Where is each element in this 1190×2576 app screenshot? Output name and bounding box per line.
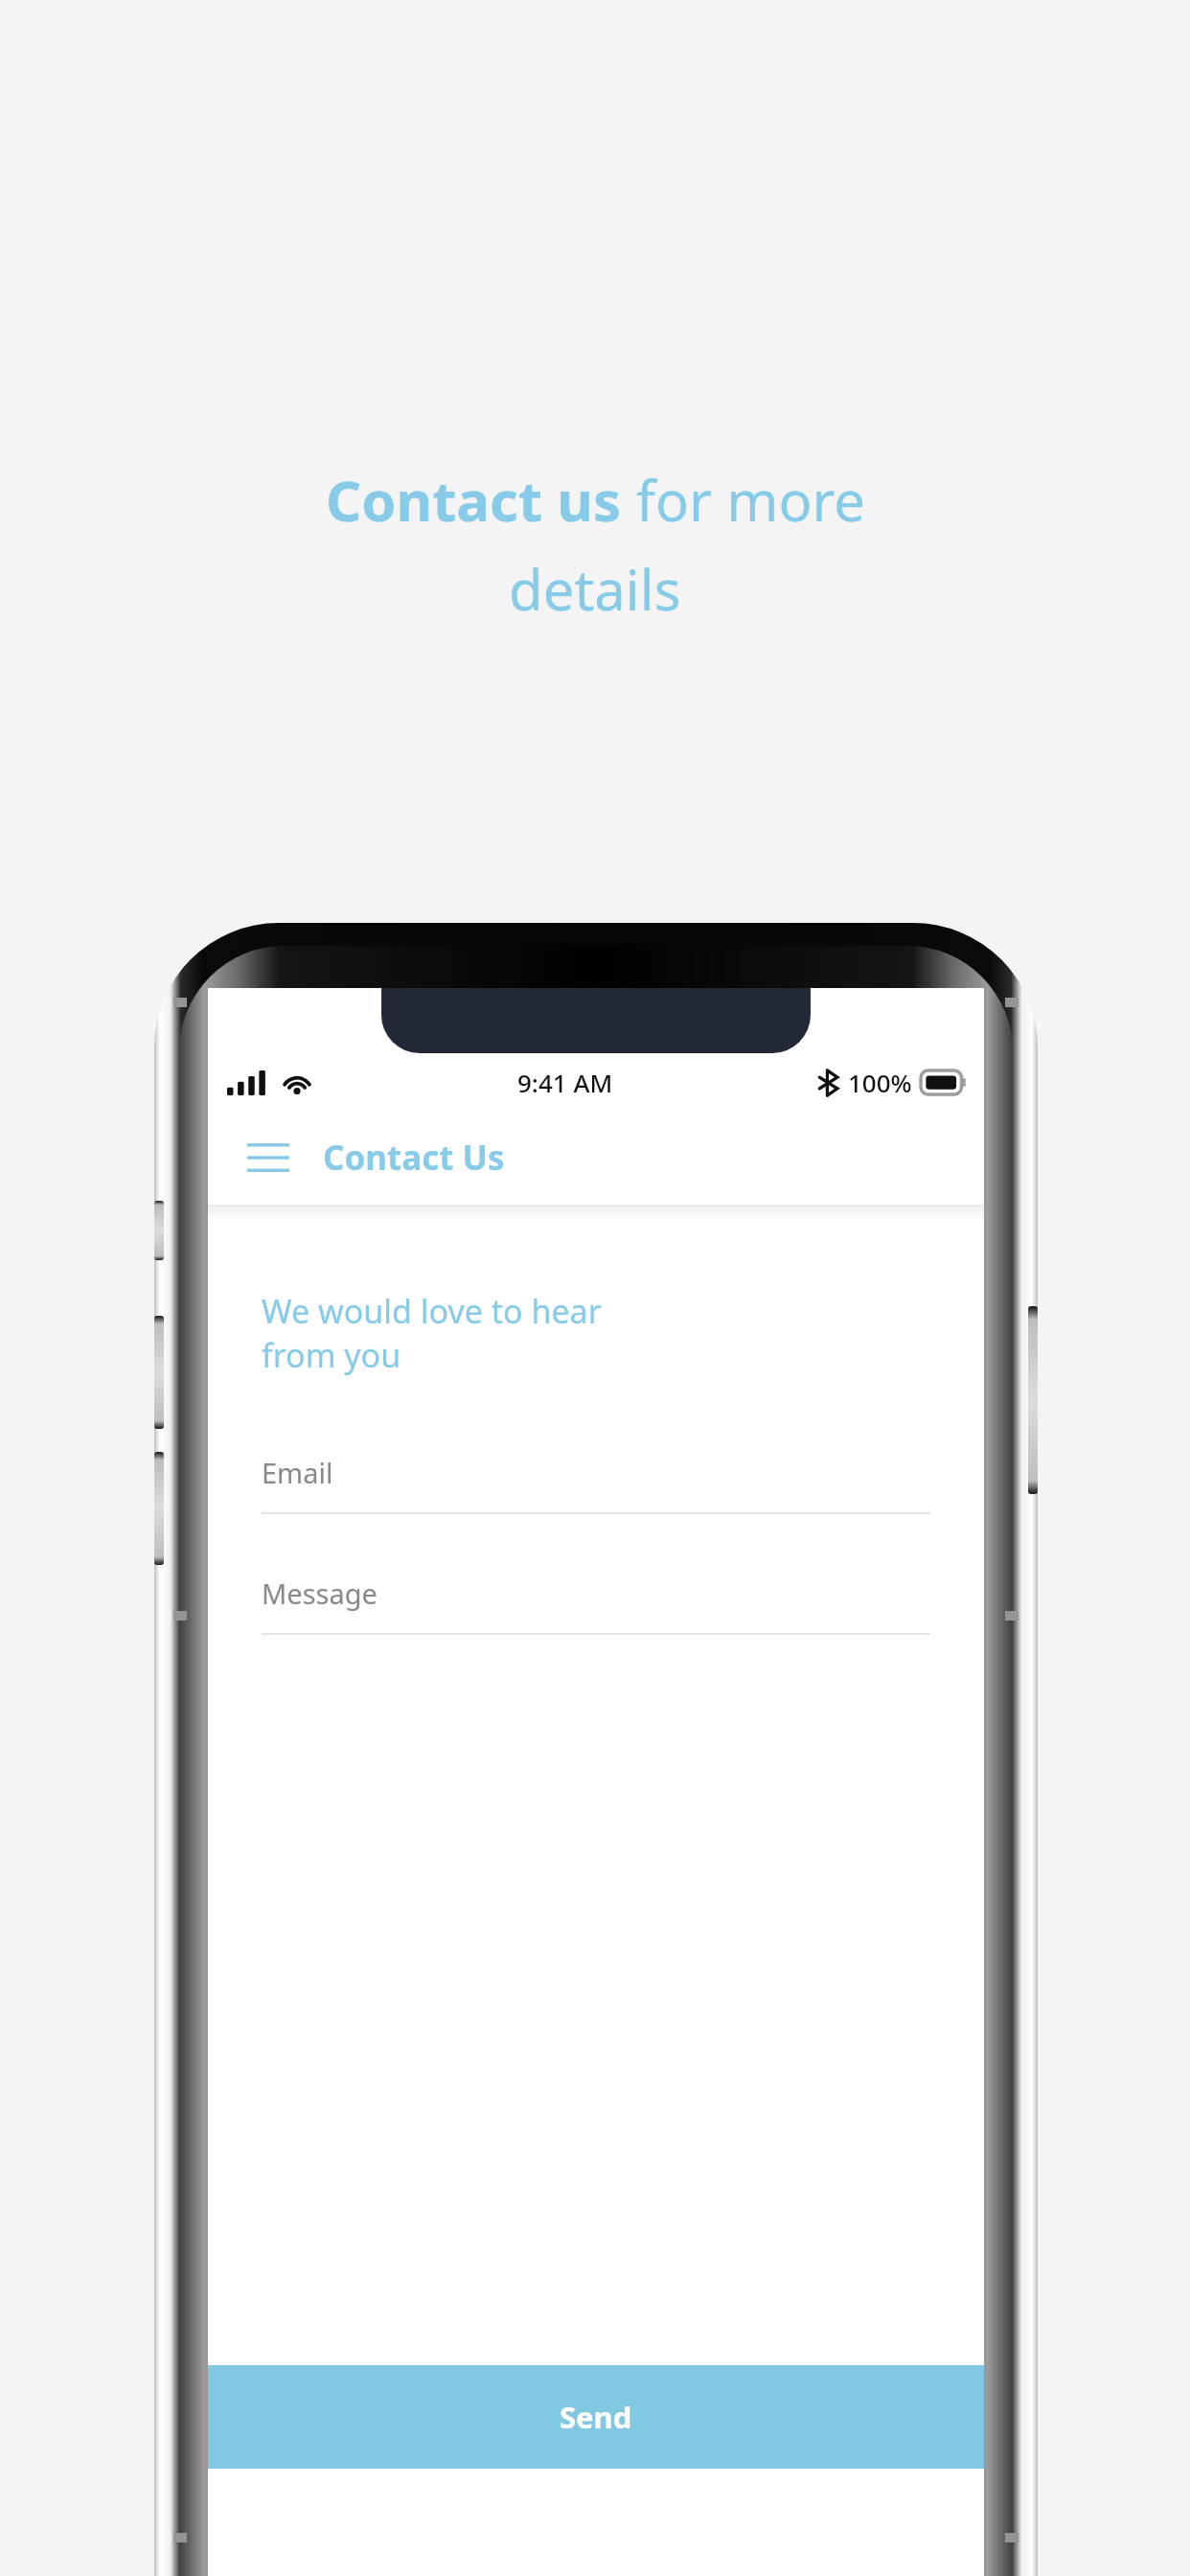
staticText: Send [560,2397,632,2437]
button[interactable]: Open navigation menu [240,1130,296,1185]
staticText: details [509,551,681,627]
staticText: We would love to hear [262,1289,602,1333]
staticText: 100% [848,1066,912,1099]
button[interactable]: Email [262,1454,930,1514]
staticText: from you [262,1333,401,1377]
staticText: Email [262,1454,333,1491]
staticText: Contact us [326,462,622,538]
button[interactable]: Message [262,1575,930,1635]
staticText: Message [262,1575,378,1612]
button[interactable]: Send [208,2365,984,2469]
staticText: for more [622,462,865,538]
staticText: Contact Us [323,1135,505,1181]
staticText: 9:41 AM [517,1066,613,1099]
